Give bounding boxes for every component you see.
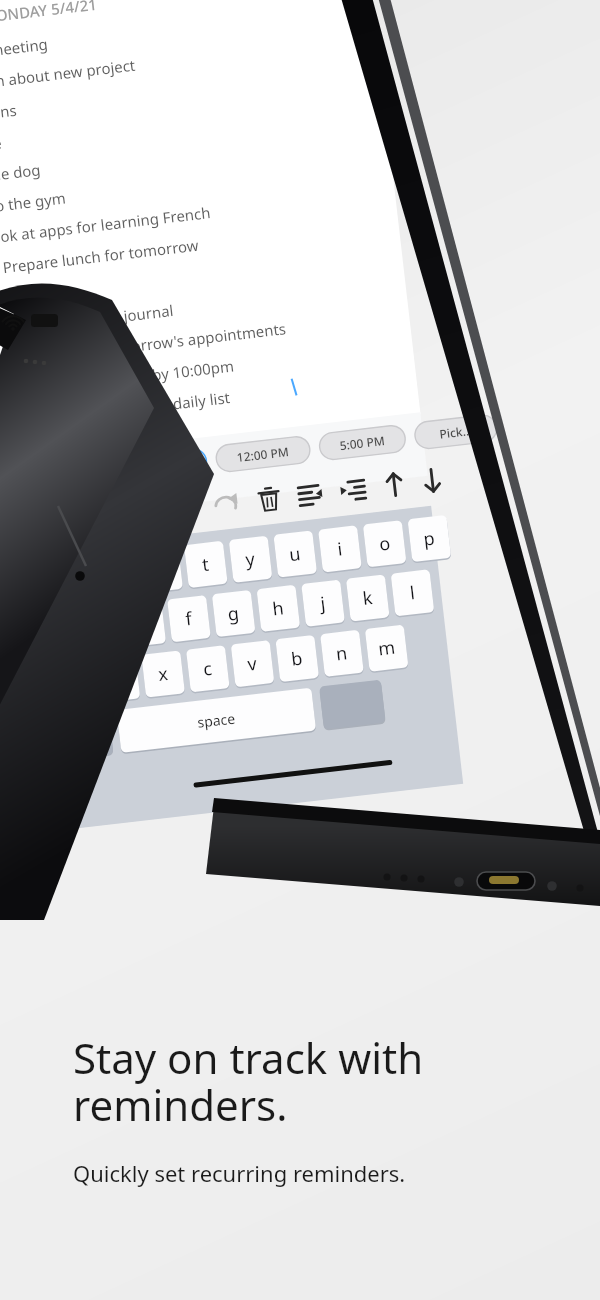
button[interactable]: Stay on track with reminders — [0, 0, 600, 1300]
